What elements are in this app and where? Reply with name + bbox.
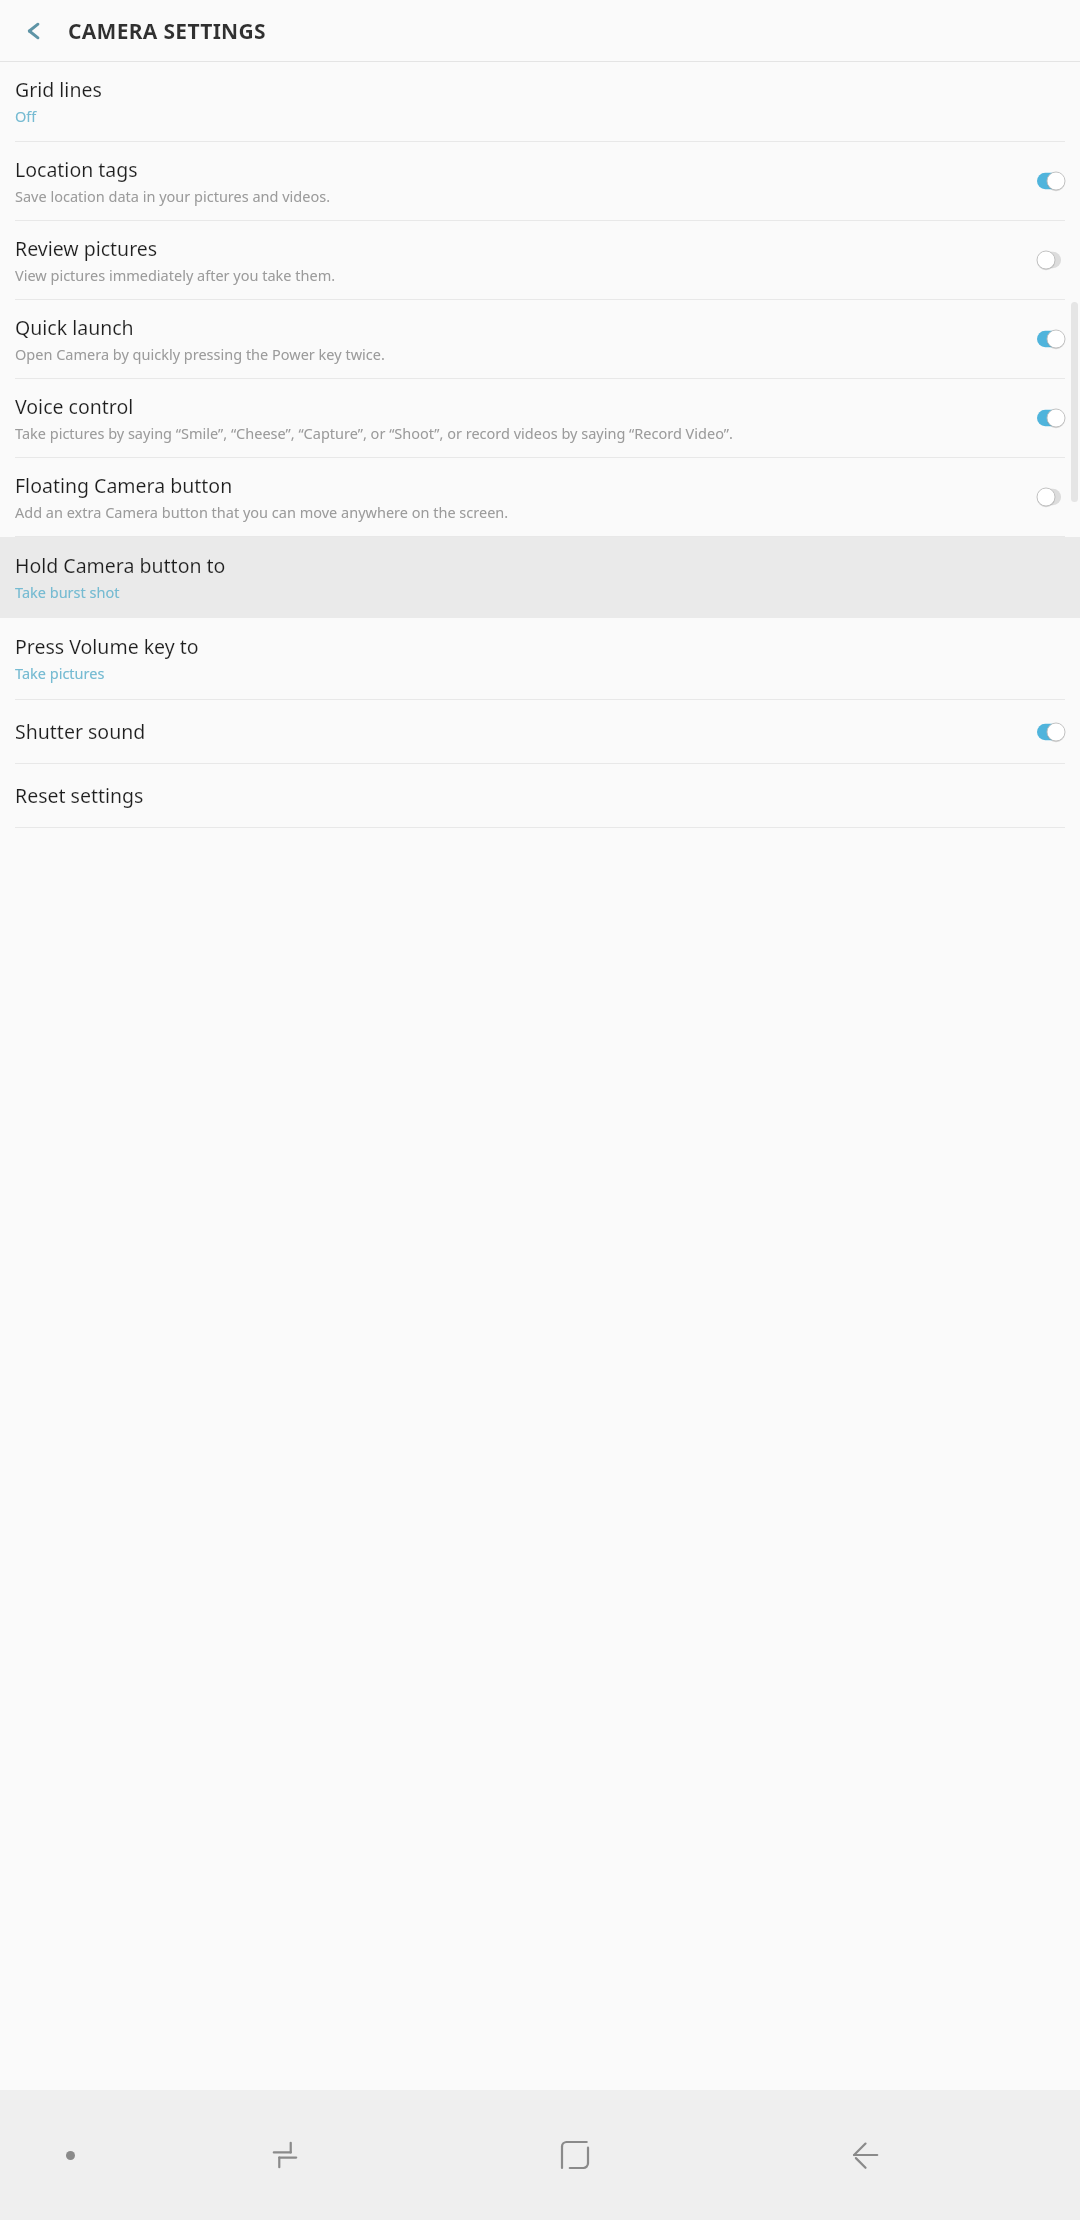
staticText: Grid lines [15, 76, 102, 103]
staticText: Floating Camera button [15, 472, 233, 499]
button[interactable]: Toggle on [1037, 409, 1065, 427]
button[interactable]: Shutter sound [0, 700, 1080, 763]
staticText: View pictures immediately after you take… [15, 265, 1025, 285]
staticText: Off [15, 106, 1065, 126]
button[interactable]: Home [430, 2090, 720, 2220]
staticText: Save location data in your pictures and … [15, 186, 1025, 206]
staticText: Take burst shot [15, 582, 1065, 602]
button[interactable]: Back [0, 0, 68, 62]
button[interactable]: Toggle on [1037, 723, 1065, 741]
button[interactable]: Menu indicator [0, 2090, 140, 2220]
button[interactable]: Quick launch [0, 300, 1080, 378]
staticText: Take pictures [15, 663, 1065, 683]
staticText: Hold Camera button to [15, 552, 226, 579]
staticText: Location tags [15, 156, 138, 183]
staticText: Reset settings [15, 782, 144, 809]
staticText: Take pictures by saying “Smile”, “Cheese… [15, 423, 995, 443]
button[interactable]: Press Volume key to [0, 618, 1080, 699]
button[interactable]: Recents [140, 2090, 430, 2220]
staticText: Add an extra Camera button that you can … [15, 502, 975, 522]
button[interactable]: Toggle on [1037, 330, 1065, 348]
staticText: Voice control [15, 393, 134, 420]
staticText: CAMERA SETTINGS [68, 17, 266, 46]
button[interactable]: Voice control [0, 379, 1080, 457]
staticText: Review pictures [15, 235, 158, 262]
staticText: Shutter sound [15, 718, 146, 745]
button[interactable]: Toggle off [1037, 251, 1065, 269]
button[interactable]: Reset settings [0, 764, 1080, 827]
button[interactable]: Floating Camera button [0, 458, 1080, 536]
button[interactable]: Toggle on [1037, 172, 1065, 190]
button[interactable]: Grid lines [0, 62, 1080, 141]
button[interactable]: Hold Camera button to [0, 537, 1080, 618]
button[interactable]: Toggle off [1037, 488, 1065, 506]
button[interactable]: Location tags [0, 142, 1080, 220]
staticText: Press Volume key to [15, 633, 199, 660]
staticText: Quick launch [15, 314, 134, 341]
staticText: Open Camera by quickly pressing the Powe… [15, 344, 975, 364]
button[interactable]: Back [720, 2090, 1010, 2220]
button[interactable]: Review pictures [0, 221, 1080, 299]
